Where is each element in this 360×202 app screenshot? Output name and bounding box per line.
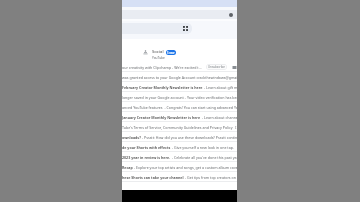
staticText: - Explore your top artists and songs, ge… — [133, 165, 237, 170]
staticText: - Celebrate all you've done this past ye… — [171, 155, 237, 160]
staticText: February Creator Monthly Newsletter is h… — [122, 85, 203, 90]
button[interactable]: our creativity with Clipchamp - We're ex… — [122, 62, 237, 72]
button[interactable]: Unsubscribe — [206, 64, 227, 70]
button[interactable]: Tube's Terms of Service, Community Guide… — [122, 122, 237, 132]
staticText: - Learn about gift memberships, — [203, 85, 237, 90]
button[interactable]: de your Shorts with effects — [122, 142, 237, 152]
staticText: - Give yourself a new look in one tap. — [171, 145, 234, 150]
staticText: YouTube — [152, 56, 165, 60]
button[interactable]: Search in mail — [122, 23, 192, 34]
button[interactable]: Recap — [122, 162, 237, 172]
staticText: was granted access to your Google Accoun… — [122, 75, 237, 80]
staticText: Tube's Terms of Service, Community Guide… — [122, 125, 237, 130]
staticText: Social — [152, 49, 164, 55]
button[interactable]: hese Shorts can take your channel — [122, 172, 237, 182]
button[interactable]: Google apps — [183, 26, 188, 31]
staticText: ownloads? — [122, 135, 141, 140]
staticText: Unsubscribe — [208, 65, 225, 69]
staticText: - Learn about channel analytics — [201, 115, 237, 120]
staticText: hese Shorts can take your channel — [122, 175, 184, 180]
staticText: our creativity with Clipchamp - We're ex… — [122, 65, 202, 70]
button[interactable]: Account — [229, 13, 233, 17]
staticText: anced YouTube features - Congrats! You c… — [122, 105, 237, 110]
button[interactable]: February Creator Monthly Newsletter is h… — [122, 82, 237, 92]
staticText: January Creator Monthly Newsletter is he… — [122, 115, 201, 120]
button[interactable]: ownloads? — [122, 132, 237, 142]
staticText: longer saved in your Google account - Yo… — [122, 95, 237, 100]
button[interactable]: anced YouTube features - Congrats! You c… — [122, 102, 237, 112]
staticText: - Pssstt: How did you use these download… — [141, 135, 237, 140]
staticText: - Get tips from top creators on Shorts — [184, 175, 237, 180]
button[interactable]: January Creator Monthly Newsletter is he… — [122, 112, 237, 122]
button[interactable]: More — [232, 65, 237, 70]
staticText: 5 new — [167, 51, 175, 55]
staticText: de your Shorts with effects — [122, 145, 171, 150]
staticText: Recap — [122, 165, 133, 170]
button[interactable]: Social — [122, 45, 237, 62]
button[interactable]: longer saved in your Google account - Yo… — [122, 92, 237, 102]
button[interactable]: was granted access to your Google Accoun… — [122, 72, 237, 82]
staticText: 2023 year in review is here. — [122, 155, 171, 160]
button[interactable]: 2023 year in review is here. — [122, 152, 237, 162]
